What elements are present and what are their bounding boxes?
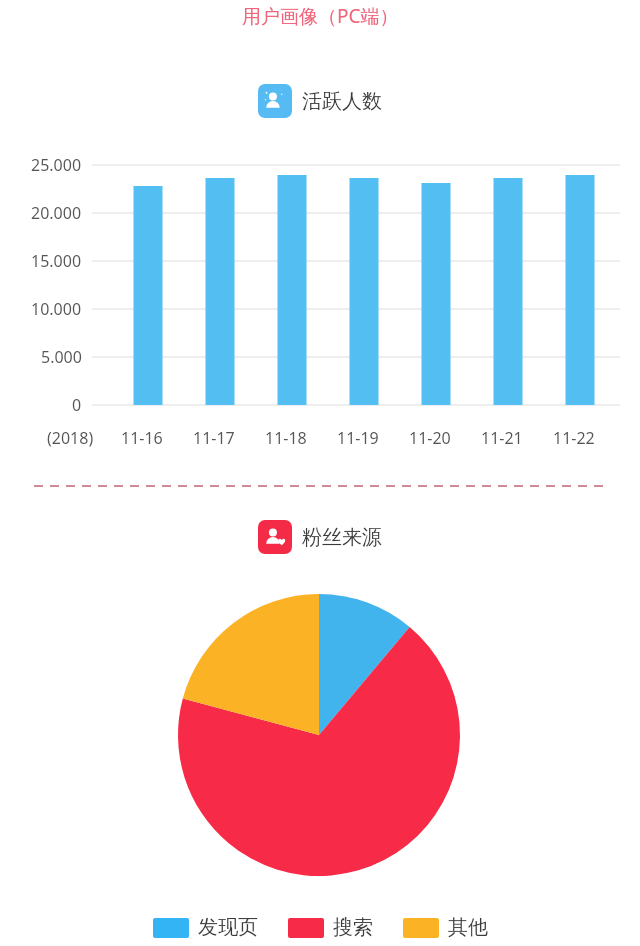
staticText: 11-18 [265, 427, 307, 449]
other: 活跃人数 [258, 84, 292, 118]
staticText: 其他 [448, 915, 488, 940]
staticText: 5.000 [41, 346, 82, 368]
staticText: 11-19 [337, 427, 379, 449]
staticText: 15.000 [31, 250, 82, 272]
staticText: 11-17 [193, 427, 235, 449]
staticText: 活跃人数 [302, 89, 382, 114]
other: 粉丝来源 [258, 520, 292, 554]
button[interactable]: 活跃人数 [258, 84, 382, 118]
staticText: (2018) [47, 427, 94, 449]
staticText: 25.000 [31, 154, 82, 176]
button[interactable]: 其他 [403, 915, 488, 940]
staticText: 用户画像（PC端） [242, 3, 399, 29]
button[interactable]: 搜索 [288, 915, 373, 940]
button[interactable]: 粉丝来源 [258, 520, 382, 554]
staticText: 粉丝来源 [302, 525, 382, 550]
staticText: 发现页 [198, 915, 258, 940]
staticText: 搜索 [333, 915, 373, 940]
staticText: 11-22 [553, 427, 595, 449]
staticText: 11-16 [121, 427, 163, 449]
staticText: 0 [72, 394, 82, 416]
staticText: 11-20 [409, 427, 451, 449]
staticText: 20.000 [31, 202, 82, 224]
staticText: 11-21 [481, 427, 523, 449]
button[interactable]: 发现页 [153, 915, 258, 940]
staticText: 10.000 [31, 298, 82, 320]
